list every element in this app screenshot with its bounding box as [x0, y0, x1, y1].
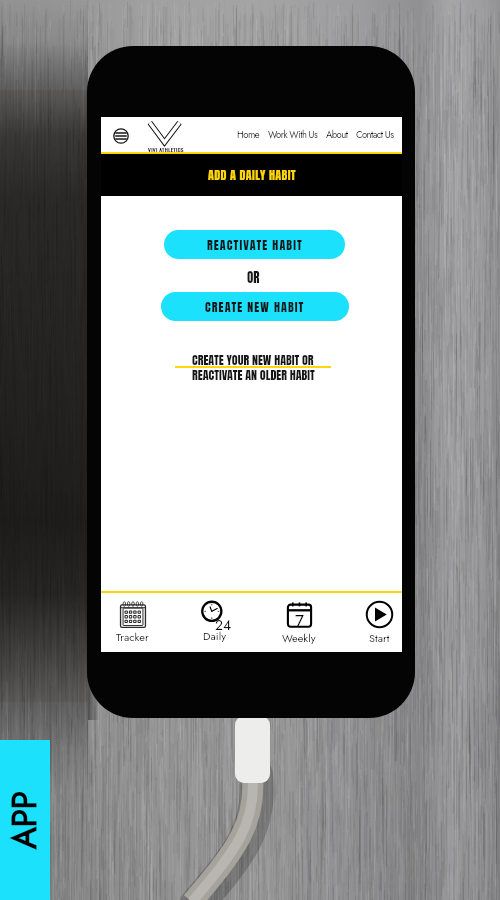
staticText: CREATE YOUR NEW HABIT OR: [192, 351, 314, 369]
staticText: REACTIVATE HABIT: [207, 236, 303, 254]
button[interactable]: About: [326, 128, 348, 142]
staticText: 7: [295, 609, 304, 634]
button[interactable]: Contact Us: [356, 128, 394, 142]
staticText: REACTIVATE AN OLDER HABIT: [192, 366, 315, 384]
staticText: Start: [369, 630, 390, 646]
button[interactable]: Open navigation menu: [113, 128, 129, 144]
button[interactable]: Start: [353, 600, 405, 647]
button[interactable]: Daily: [188, 600, 240, 647]
button[interactable]: CREATE NEW HABIT: [161, 292, 349, 321]
staticText: About: [326, 128, 348, 142]
staticText: Weekly: [282, 630, 316, 646]
button[interactable]: Work With Us: [268, 128, 318, 142]
staticText: Daily: [203, 628, 227, 644]
button[interactable]: Tracker: [106, 600, 158, 647]
staticText: ADD A DAILY HABIT: [208, 166, 296, 184]
staticText: Tracker: [116, 629, 149, 645]
staticText: OR: [247, 268, 260, 288]
staticText: Contact Us: [356, 128, 394, 142]
staticText: VIVI ATHLETICS: [148, 145, 184, 153]
button[interactable]: Weekly: [273, 600, 325, 647]
staticText: Home: [237, 128, 260, 142]
staticText: 24: [215, 615, 232, 635]
staticText: CREATE NEW HABIT: [205, 298, 305, 316]
button[interactable]: Home: [237, 128, 260, 142]
button[interactable]: REACTIVATE HABIT: [164, 230, 345, 259]
staticText: APP: [1, 791, 49, 849]
staticText: Work With Us: [268, 128, 318, 142]
